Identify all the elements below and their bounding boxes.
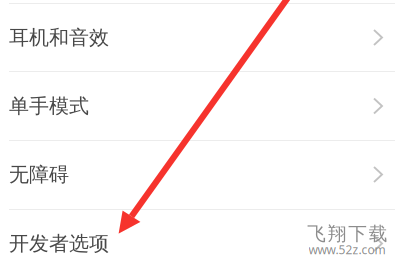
staticText: 翔 bbox=[328, 222, 347, 245]
staticText: 单手模式 bbox=[9, 94, 89, 118]
staticText: 无障碍 bbox=[9, 162, 69, 187]
button[interactable]: 单手模式 bbox=[0, 72, 400, 140]
staticText: 开发者选项 bbox=[9, 231, 109, 256]
button[interactable]: 开发者选项 bbox=[0, 209, 400, 264]
staticText: 下 bbox=[348, 222, 367, 245]
staticText: 飞 bbox=[307, 222, 326, 245]
button[interactable]: 无障碍 bbox=[0, 140, 400, 209]
button[interactable]: 耳机和音效 bbox=[0, 3, 400, 72]
staticText: www.52z.com bbox=[308, 241, 385, 257]
staticText: 载 bbox=[369, 222, 388, 245]
staticText: 耳机和音效 bbox=[9, 25, 109, 50]
